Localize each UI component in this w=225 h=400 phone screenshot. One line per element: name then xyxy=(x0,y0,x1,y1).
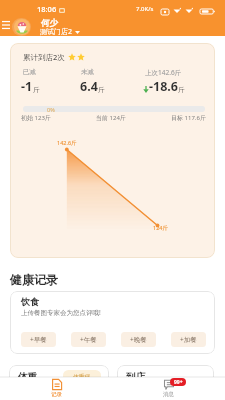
staticText: 体重秤 xyxy=(73,373,91,380)
button[interactable]: Avatar xyxy=(12,18,31,36)
button[interactable]: 到店 xyxy=(117,365,214,395)
staticText: 斤 xyxy=(33,86,40,94)
button[interactable]: +晚餐 xyxy=(121,332,156,347)
button[interactable]: 饮食 xyxy=(10,291,215,354)
staticText: 142.6斤 xyxy=(57,139,77,147)
staticText: 累计到店2次 xyxy=(23,52,65,62)
staticText: 健康记录 xyxy=(10,272,58,287)
staticText: 体重 xyxy=(18,371,37,383)
staticText: 18:06 xyxy=(37,4,57,14)
staticText: +晚餐 xyxy=(130,335,147,344)
button[interactable]: Menu xyxy=(0,16,12,34)
staticText: 7.0K/s xyxy=(136,5,154,13)
staticText: +早餐 xyxy=(30,335,47,344)
staticText: 消息 xyxy=(163,391,174,398)
staticText: 未减 xyxy=(81,68,94,76)
button[interactable]: 消息 xyxy=(153,377,184,400)
button[interactable]: 体重 xyxy=(9,365,109,395)
staticText: 到店 xyxy=(126,371,145,383)
button[interactable]: +加餐 xyxy=(171,332,206,347)
staticText: 0% xyxy=(47,106,55,113)
button[interactable]: 体重秤 xyxy=(63,370,101,382)
button[interactable]: +午餐 xyxy=(71,332,106,347)
staticText: 初始 123斤 xyxy=(21,114,51,122)
staticText: +午餐 xyxy=(80,335,97,344)
staticText: 上传餐图专家会为您点评哦! xyxy=(21,308,101,317)
staticText: 何少 xyxy=(41,18,58,29)
staticText: 上次142.6斤 xyxy=(145,68,182,77)
staticText: 已减 xyxy=(23,68,36,76)
staticText: 斤 xyxy=(98,86,105,94)
staticText: -1 xyxy=(21,78,33,95)
staticText: +加餐 xyxy=(180,335,197,344)
button[interactable]: +早餐 xyxy=(21,332,56,347)
staticText: 记录 xyxy=(51,391,62,398)
staticText: 测试门店2 xyxy=(40,27,73,37)
staticText: -18.6 xyxy=(149,78,178,95)
staticText: 斤 xyxy=(178,86,185,94)
staticText: 饮食 xyxy=(21,296,39,307)
staticText: 124斤 xyxy=(153,224,168,232)
staticText: 6.4 xyxy=(80,78,98,95)
staticText: 目标 117.6斤 xyxy=(171,114,206,122)
staticText: 99+ xyxy=(174,379,183,386)
staticText: 当前 124斤 xyxy=(96,114,126,122)
button[interactable]: 记录 xyxy=(41,377,72,400)
